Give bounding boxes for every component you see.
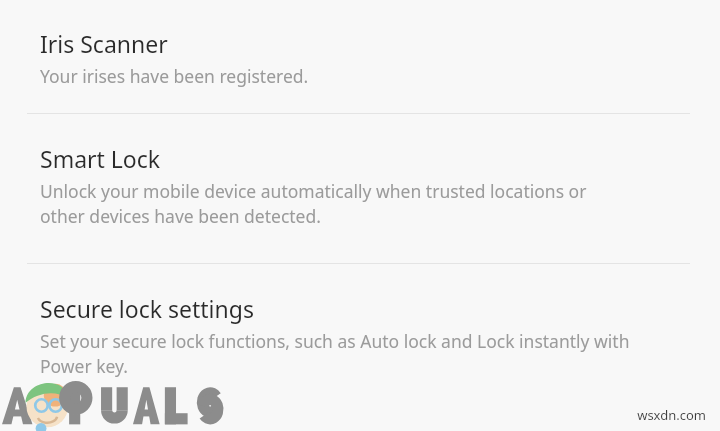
staticText: Iris Scanner xyxy=(40,28,168,59)
staticText: Your irises have been registered. xyxy=(40,64,309,88)
staticText: Set your secure lock functions, such as … xyxy=(40,329,638,378)
staticText: wsxdn.com xyxy=(637,406,706,424)
button[interactable]: Smart Lock xyxy=(0,114,720,263)
staticText: Unlock your mobile device automatically … xyxy=(40,179,590,228)
button[interactable]: Secure lock settings xyxy=(0,264,720,431)
staticText: Secure lock settings xyxy=(40,293,254,324)
staticText: Smart Lock xyxy=(40,143,161,174)
button[interactable]: Iris Scanner xyxy=(0,0,720,113)
